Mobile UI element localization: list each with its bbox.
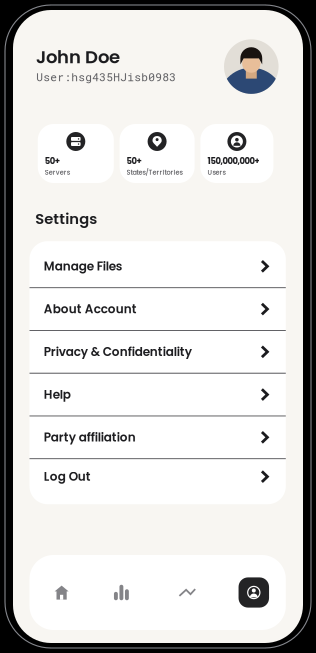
button[interactable]: Trends — [164, 566, 210, 618]
staticText: Users — [207, 168, 225, 177]
button[interactable]: About Account — [29, 288, 286, 331]
button[interactable]: Profile — [231, 566, 277, 618]
button[interactable]: Statistics — [98, 566, 144, 618]
staticText: About Account — [44, 301, 137, 317]
staticText: 50+ — [45, 155, 60, 167]
staticText: Settings — [35, 208, 97, 229]
button[interactable]: Home — [39, 566, 85, 618]
staticText: Party affiliation — [44, 429, 136, 446]
button[interactable]: Help — [29, 374, 286, 416]
button[interactable]: Privacy & Confidentiality — [29, 331, 286, 374]
staticText: User:hsg435HJisb0983 — [36, 69, 176, 84]
staticText: Manage Files — [44, 258, 123, 275]
staticText: States/Territories — [127, 168, 183, 177]
button[interactable]: Party affiliation — [29, 416, 286, 459]
staticText: 150,000,000+ — [207, 155, 259, 167]
staticText: Servers — [45, 168, 70, 177]
staticText: Help — [44, 386, 71, 403]
button[interactable]: Log Out — [29, 459, 286, 494]
staticText: 50+ — [127, 155, 142, 167]
staticText: John Doe — [36, 44, 120, 70]
staticText: Privacy & Confidentiality — [44, 343, 192, 360]
staticText: Log Out — [44, 468, 91, 485]
button[interactable]: Manage Files — [29, 245, 286, 288]
